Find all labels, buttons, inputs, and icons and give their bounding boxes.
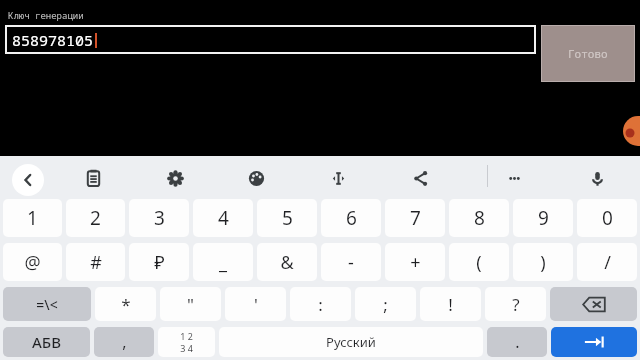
staticText: " bbox=[187, 293, 194, 316]
staticText: ) bbox=[540, 250, 546, 275]
staticText: 2 bbox=[90, 205, 101, 231]
button[interactable]: Clipboard bbox=[79, 164, 107, 192]
button[interactable]: Cursor control bbox=[324, 164, 352, 192]
staticText: Готово bbox=[568, 46, 608, 61]
staticText: ' bbox=[254, 293, 258, 316]
staticText: 3 bbox=[154, 205, 165, 231]
staticText: , bbox=[122, 331, 127, 353]
staticText: 1 2 bbox=[180, 330, 193, 342]
button[interactable]: 5 bbox=[257, 199, 317, 237]
button[interactable]: 8 bbox=[449, 199, 509, 237]
staticText: . bbox=[515, 331, 520, 353]
staticText: 5 bbox=[282, 205, 293, 231]
button[interactable]: ; bbox=[355, 287, 416, 321]
button[interactable]: ' bbox=[225, 287, 286, 321]
staticText: АБВ bbox=[32, 332, 61, 352]
button[interactable]: + bbox=[385, 243, 445, 281]
staticText: 0 bbox=[602, 205, 613, 231]
staticText: 9 bbox=[538, 205, 549, 231]
button[interactable]: , bbox=[94, 327, 154, 357]
button[interactable]: ₽ bbox=[129, 243, 189, 281]
staticText: ; bbox=[383, 293, 388, 316]
button[interactable]: ) bbox=[513, 243, 573, 281]
button[interactable]: : bbox=[290, 287, 351, 321]
staticText: + bbox=[410, 250, 421, 275]
button[interactable]: 2 bbox=[66, 199, 125, 237]
staticText: 858978105 bbox=[12, 30, 94, 50]
button[interactable]: More options bbox=[500, 164, 528, 192]
button[interactable]: 4 bbox=[193, 199, 253, 237]
button[interactable]: " bbox=[160, 287, 221, 321]
button[interactable]: * bbox=[95, 287, 156, 321]
staticText: 7 bbox=[410, 205, 421, 231]
staticText: @ bbox=[24, 250, 41, 275]
staticText: # bbox=[90, 250, 102, 275]
button[interactable]: Voice input bbox=[583, 164, 611, 192]
staticText: / bbox=[604, 250, 611, 275]
button[interactable]: _ bbox=[193, 243, 253, 281]
button[interactable]: 3 bbox=[129, 199, 189, 237]
staticText: ₽ bbox=[154, 250, 165, 275]
staticText: - bbox=[348, 250, 354, 275]
button[interactable]: Enter bbox=[551, 327, 637, 357]
button[interactable]: 6 bbox=[321, 199, 381, 237]
button[interactable]: ! bbox=[420, 287, 481, 321]
button[interactable]: =\< bbox=[3, 287, 91, 321]
staticText: 3 4 bbox=[180, 342, 193, 354]
staticText: 4 bbox=[218, 205, 229, 231]
staticText: ! bbox=[448, 293, 453, 316]
staticText: ? bbox=[512, 293, 520, 316]
button[interactable]: Share bbox=[406, 164, 434, 192]
button[interactable]: 1 bbox=[3, 199, 62, 237]
button[interactable]: ? bbox=[485, 287, 546, 321]
staticText: Ключ генерации bbox=[8, 9, 84, 21]
staticText: 1 bbox=[27, 205, 38, 231]
button[interactable]: Settings bbox=[161, 164, 189, 192]
button[interactable]: Theme bbox=[242, 164, 270, 192]
button[interactable]: 0 bbox=[577, 199, 637, 237]
staticText: 8 bbox=[474, 205, 485, 231]
staticText: : bbox=[318, 293, 323, 316]
staticText: 6 bbox=[346, 205, 357, 231]
staticText: * bbox=[121, 293, 131, 316]
button[interactable]: 9 bbox=[513, 199, 573, 237]
button[interactable]: Русский bbox=[219, 327, 483, 357]
button[interactable]: 858978105 bbox=[5, 25, 536, 54]
button[interactable]: ( bbox=[449, 243, 509, 281]
button[interactable]: Numbers bbox=[158, 327, 215, 357]
button[interactable]: 7 bbox=[385, 199, 445, 237]
staticText: Русский bbox=[326, 333, 376, 351]
button[interactable]: Back bbox=[12, 164, 44, 196]
staticText: & bbox=[280, 250, 294, 275]
button[interactable]: Backspace bbox=[550, 287, 637, 321]
button[interactable]: АБВ bbox=[3, 327, 90, 357]
button[interactable]: # bbox=[66, 243, 125, 281]
staticText: _ bbox=[219, 250, 227, 275]
button[interactable]: & bbox=[257, 243, 317, 281]
staticText: =\< bbox=[36, 295, 58, 314]
staticText: ( bbox=[476, 250, 482, 275]
button[interactable]: - bbox=[321, 243, 381, 281]
button[interactable]: . bbox=[487, 327, 547, 357]
button[interactable]: @ bbox=[3, 243, 62, 281]
button[interactable]: Готово bbox=[541, 25, 635, 82]
button[interactable]: / bbox=[577, 243, 637, 281]
